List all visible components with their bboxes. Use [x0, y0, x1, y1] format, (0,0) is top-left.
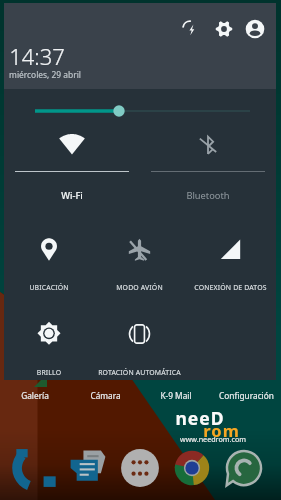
button[interactable]: WhatsApp [222, 446, 266, 490]
staticText: MODO AVIÓN [94, 283, 185, 292]
button[interactable]: Bluetooth [140, 116, 276, 206]
button[interactable]: CONEXIÓN DE DATOS [185, 209, 276, 299]
staticText: BRILLO [4, 368, 94, 377]
staticText: Cámara [90, 390, 121, 401]
staticText: Configuración [219, 390, 274, 401]
staticText: CONEXIÓN DE DATOS [185, 283, 276, 292]
staticText: Bluetooth [140, 189, 276, 202]
staticText: www.needrom.com [180, 434, 246, 444]
button[interactable]: 14:37 [5, 38, 125, 84]
button[interactable]: Account [242, 16, 268, 42]
button[interactable]: Settings [211, 16, 237, 42]
staticText: Wi-Fi [4, 189, 140, 202]
staticText: ROTACIÓN AUTOMÁTICA [94, 368, 185, 377]
staticText: rom [203, 419, 240, 441]
button[interactable]: Wi-Fi [4, 116, 140, 206]
button[interactable]: Galería [0, 388, 70, 402]
button[interactable]: Cámara [70, 388, 140, 402]
staticText: miércoles, 29 abril [9, 69, 81, 80]
staticText: UBICACIÓN [4, 283, 94, 292]
button[interactable]: Configuración [211, 388, 281, 402]
button[interactable]: All apps [118, 446, 162, 490]
button[interactable]: Brightness [4, 89, 276, 119]
staticText: neeD [175, 406, 225, 430]
button[interactable]: ROTACIÓN AUTOMÁTICA [94, 294, 185, 384]
button[interactable]: UBICACIÓN [4, 209, 94, 299]
button[interactable]: Battery saver [177, 15, 203, 41]
button[interactable]: Messaging [66, 446, 110, 490]
staticText: 14:37 [9, 41, 65, 71]
button[interactable]: K-9 Mail [141, 388, 211, 402]
button[interactable]: MODO AVIÓN [94, 209, 185, 299]
button[interactable]: Phone [14, 446, 58, 490]
staticText: K-9 Mail [160, 390, 192, 401]
button[interactable]: BRILLO [4, 294, 94, 384]
button[interactable]: Chrome [170, 446, 214, 490]
staticText: Galería [21, 390, 49, 401]
